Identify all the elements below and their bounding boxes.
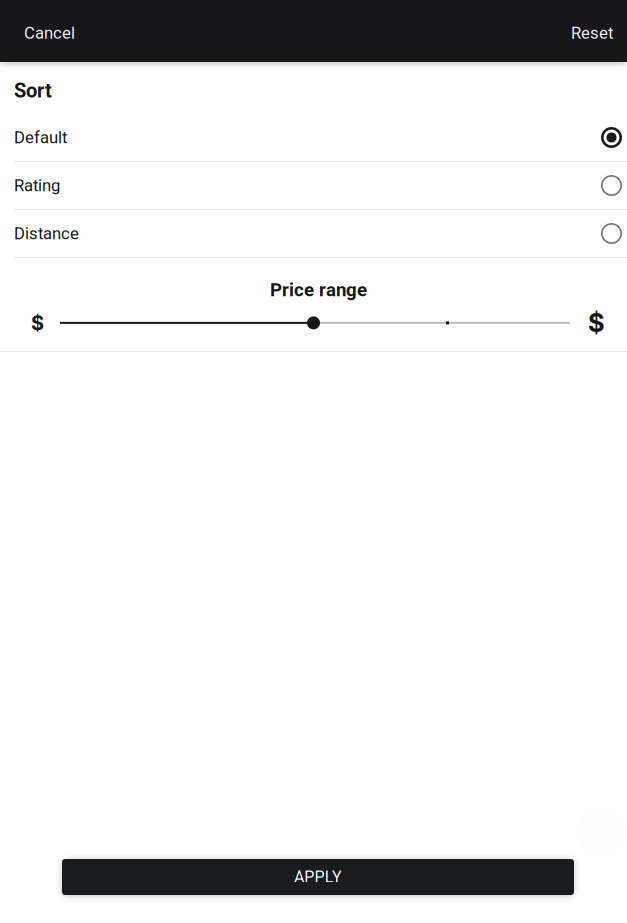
staticText: Distance xyxy=(14,224,79,243)
staticText: Cancel xyxy=(24,23,75,43)
button[interactable]: APPLY xyxy=(62,859,574,895)
staticText: Default xyxy=(14,128,67,147)
staticText: Reset xyxy=(571,23,613,43)
staticText: $ xyxy=(588,308,605,338)
button[interactable]: Rating xyxy=(0,162,627,210)
button[interactable]: Reset xyxy=(553,0,627,62)
staticText: Price range xyxy=(270,279,367,301)
button[interactable]: Price range slider xyxy=(0,310,627,336)
staticText: APPLY xyxy=(294,868,342,886)
button[interactable]: Distance xyxy=(0,210,627,258)
button[interactable]: Default xyxy=(0,114,627,162)
staticText: $ xyxy=(31,311,44,335)
staticText: Sort xyxy=(14,79,52,102)
button[interactable]: Cancel xyxy=(0,0,93,62)
staticText: Rating xyxy=(14,176,60,195)
